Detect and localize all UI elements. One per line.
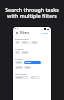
button[interactable]: Design [24,66,31,69]
staticText: Clear [42,31,48,34]
staticText: Design [25,66,30,69]
staticText: Website [16,61,22,64]
button[interactable]: Clear [41,30,49,35]
button[interactable]: Team [31,41,38,44]
button[interactable]: Me [15,41,20,44]
staticText: Responsible [15,37,29,40]
button[interactable]: Mobile application 2.0 [24,61,41,64]
button[interactable]: Website [15,61,23,64]
staticText: Mobile application 2.0 [25,61,40,64]
button[interactable]: Anyone [21,51,29,54]
staticText: Me [16,41,19,44]
button[interactable]: Q3 planning [30,76,40,79]
button[interactable]: Alex Doe [21,41,30,44]
staticText: Creator [15,47,24,50]
button[interactable]: Me [15,51,20,54]
staticText: 9:41 [15,27,19,30]
staticText: Q3 planning [31,76,39,79]
staticText: Milestone [15,72,27,75]
staticText: Backlog [16,66,22,69]
button[interactable]: Release candidate [15,76,29,79]
staticText: Me [16,51,19,54]
staticText: Alex Doe [22,41,29,44]
staticText: Search through tasks with multiple filte… [3,6,61,20]
staticText: Team [32,41,37,44]
button[interactable]: Backlog [15,66,23,69]
staticText: Anyone [22,51,28,54]
staticText: Filters [20,31,30,35]
button[interactable]: Close [15,31,18,34]
staticText: Project [15,57,23,60]
staticText: Release candidate [16,76,28,79]
